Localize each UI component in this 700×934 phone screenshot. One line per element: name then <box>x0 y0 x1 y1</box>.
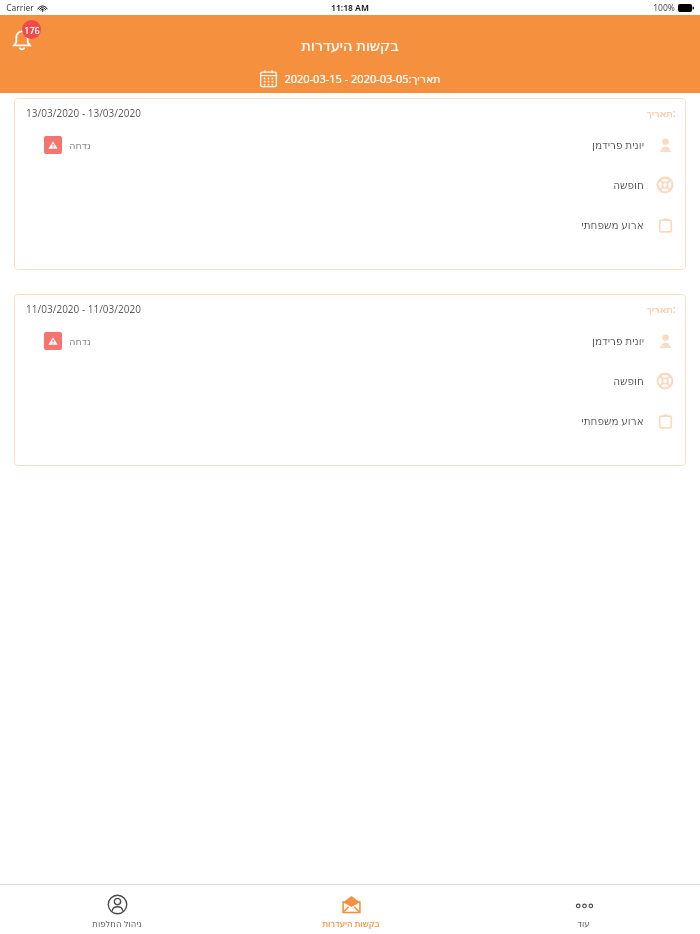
staticText: 11:18 AM <box>331 2 369 14</box>
button[interactable]: 13/03/2020 - 13/03/2020 <box>14 98 686 270</box>
button[interactable]: ניהול החלפות <box>0 889 234 930</box>
button[interactable]: בקשות היעדרות <box>234 889 467 930</box>
button[interactable]: Notifications <box>10 20 46 56</box>
staticText: ארוע משפחתי <box>581 218 644 232</box>
staticText: בקשות היעדרות <box>301 35 399 55</box>
staticText: תאריך: <box>646 106 676 120</box>
staticText: תאריך: <box>646 302 676 316</box>
staticText: יונית פרידמן <box>592 138 644 152</box>
button[interactable]: עוד <box>467 890 700 929</box>
button[interactable]: 11/03/2020 - 11/03/2020 <box>14 294 686 466</box>
staticText: 13/03/2020 - 13/03/2020 <box>26 106 141 120</box>
staticText: ארוע משפחתי <box>581 414 644 428</box>
staticText: Carrier <box>6 2 34 14</box>
staticText: יונית פרידמן <box>592 334 644 348</box>
staticText: ניהול החלפות <box>92 918 142 930</box>
staticText: 176 <box>24 24 40 36</box>
staticText: בקשות היעדרות <box>322 918 380 930</box>
staticText: נדחה <box>69 140 91 151</box>
staticText: נדחה <box>69 336 91 347</box>
staticText: 100% <box>653 2 675 14</box>
staticText: חופשה <box>613 375 644 387</box>
staticText: חופשה <box>613 179 644 191</box>
staticText: 2020-03-15 - 2020-03-05:תאריך <box>284 71 441 86</box>
button[interactable]: 2020-03-15 - 2020-03-05:תאריך <box>260 70 441 87</box>
staticText: 11/03/2020 - 11/03/2020 <box>26 302 141 316</box>
staticText: עוד <box>577 919 590 929</box>
